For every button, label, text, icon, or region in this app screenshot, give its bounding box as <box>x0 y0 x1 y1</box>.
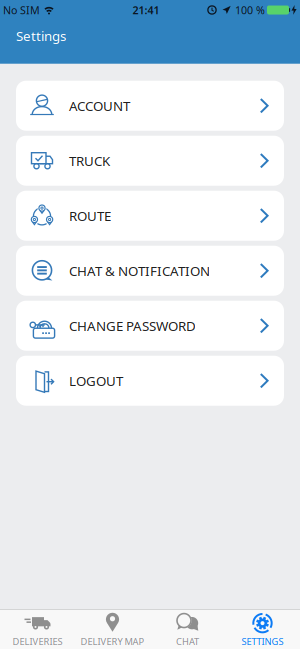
button[interactable]: ROUTE <box>16 191 284 241</box>
staticText: TRUCK <box>69 152 110 170</box>
staticText: CHAT <box>176 635 199 648</box>
staticText: ROUTE <box>69 207 111 225</box>
button[interactable]: CHAT <box>150 610 225 649</box>
staticText: ACCOUNT <box>69 97 130 115</box>
staticText: DELIVERIES <box>12 635 62 648</box>
staticText: LOGOUT <box>69 372 123 390</box>
staticText: 21:41 <box>132 3 159 17</box>
button[interactable]: DELIVERY MAP <box>75 610 150 649</box>
button[interactable]: LOGOUT <box>16 356 284 406</box>
button[interactable]: DELIVERIES <box>0 610 75 649</box>
staticText: No SIM <box>3 3 40 17</box>
button[interactable]: CHANGE PASSWORD <box>16 301 284 351</box>
staticText: CHAT & NOTIFICATION <box>69 262 210 280</box>
staticText: CHANGE PASSWORD <box>69 317 196 335</box>
staticText: SETTINGS <box>241 635 283 648</box>
button[interactable]: TRUCK <box>16 136 284 186</box>
button[interactable]: CHAT & NOTIFICATION <box>16 246 284 296</box>
staticText: DELIVERY MAP <box>80 635 144 648</box>
button[interactable]: ACCOUNT <box>16 81 284 131</box>
staticText: Settings <box>16 27 66 45</box>
button[interactable]: SETTINGS <box>225 610 300 649</box>
staticText: 100 % <box>235 3 265 17</box>
